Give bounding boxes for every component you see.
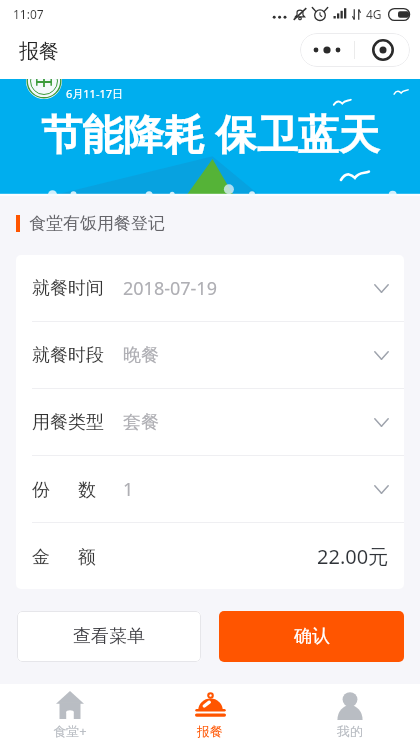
staticText: 我的: [337, 723, 363, 739]
button[interactable]: 食堂+: [0, 684, 140, 747]
staticText: 22.00元: [317, 543, 389, 570]
staticText: 套餐: [123, 411, 159, 434]
staticText: 节能降耗 保卫蓝天: [41, 105, 380, 161]
staticText: 金 额: [32, 544, 97, 569]
staticText: 确认: [294, 625, 330, 648]
staticText: 食堂+: [53, 722, 87, 740]
button[interactable]: 报餐: [140, 684, 280, 747]
staticText: 2018-07-19: [123, 276, 217, 301]
staticText: 报餐: [19, 39, 59, 64]
button[interactable]: 就餐时段: [16, 322, 404, 388]
staticText: 晚餐: [123, 344, 159, 367]
staticText: 食堂有饭用餐登记: [29, 213, 165, 234]
button[interactable]: 份 数: [16, 456, 404, 522]
staticText: 份 数: [32, 477, 97, 502]
staticText: 1: [123, 477, 134, 502]
staticText: 11:07: [13, 6, 44, 22]
staticText: 查看菜单: [73, 625, 145, 648]
button[interactable]: 我的: [280, 684, 420, 747]
button[interactable]: 确认: [219, 611, 404, 662]
staticText: 报餐: [197, 723, 223, 739]
staticText: 6月11-17日: [66, 86, 124, 101]
button[interactable]: Close mini program: [355, 33, 410, 67]
button[interactable]: More options: [300, 33, 354, 67]
button[interactable]: 查看菜单: [17, 611, 201, 662]
staticText: 用餐类型: [32, 411, 104, 434]
staticText: 4G: [366, 6, 382, 22]
button[interactable]: 就餐时间: [16, 255, 404, 321]
staticText: 就餐时段: [32, 344, 104, 367]
button[interactable]: 用餐类型: [16, 389, 404, 455]
staticText: 就餐时间: [32, 277, 104, 300]
